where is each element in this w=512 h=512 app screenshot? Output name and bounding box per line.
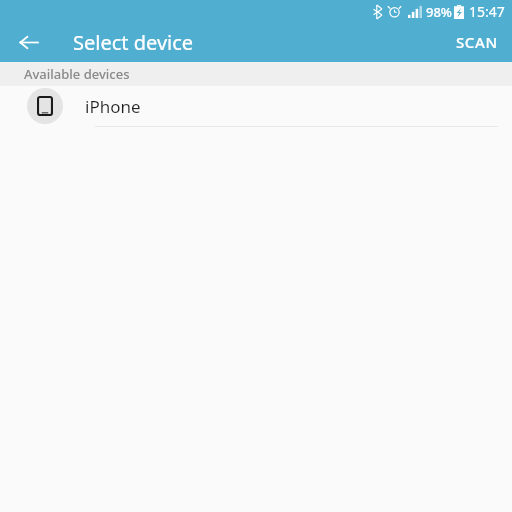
staticText: SCAN — [456, 32, 498, 52]
button[interactable]: SCAN — [442, 24, 512, 60]
button[interactable]: iPhone — [0, 86, 512, 127]
button[interactable]: Back — [14, 28, 42, 56]
staticText: 15:47 — [469, 2, 505, 21]
staticText: Select device — [73, 29, 194, 56]
staticText: iPhone — [85, 95, 141, 118]
staticText: 98% — [426, 3, 452, 21]
staticText: Available devices — [24, 65, 130, 83]
